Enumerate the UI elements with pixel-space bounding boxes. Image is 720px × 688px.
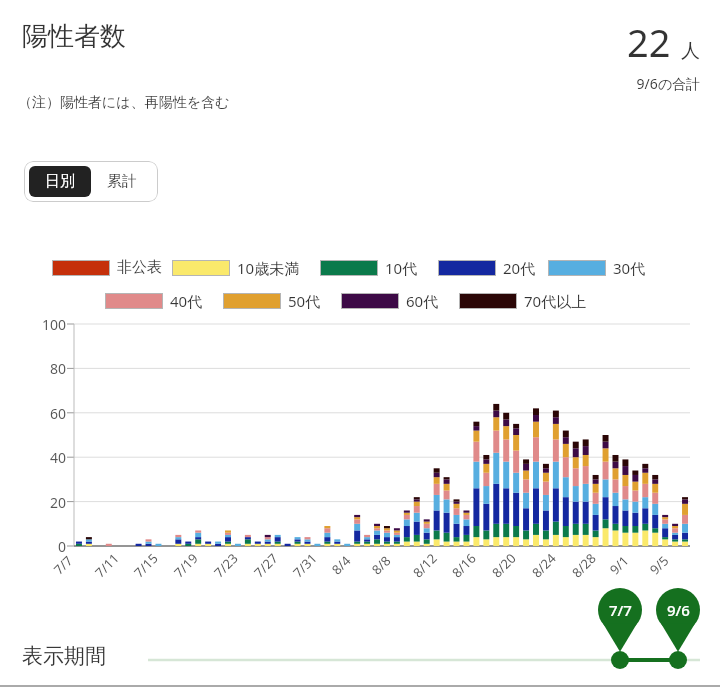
- staticText: 日別: [45, 172, 75, 191]
- staticText: 7/7: [609, 600, 632, 620]
- staticText: 20: [20, 493, 66, 512]
- staticText: 60代: [406, 291, 439, 311]
- staticText: 9/1: [606, 552, 632, 578]
- staticText: 7/7: [50, 552, 76, 578]
- button[interactable]: End date 9/6: [656, 588, 700, 632]
- staticText: 7/27: [250, 549, 282, 581]
- staticText: 陽性者数: [22, 20, 126, 53]
- staticText: 9/5: [646, 552, 672, 578]
- staticText: 7/15: [130, 549, 162, 581]
- staticText: 10歳未満: [237, 258, 300, 278]
- staticText: 40: [20, 448, 66, 467]
- staticText: 7/11: [91, 549, 123, 581]
- staticText: 8/20: [488, 549, 520, 581]
- staticText: 20代: [503, 258, 536, 278]
- staticText: 累計: [107, 172, 137, 191]
- staticText: 70代以上: [524, 291, 587, 311]
- staticText: 60: [20, 404, 66, 423]
- staticText: 30代: [613, 258, 646, 278]
- button[interactable]: 50代: [223, 291, 321, 311]
- button[interactable]: 60代: [341, 291, 439, 311]
- staticText: 7/19: [170, 549, 202, 581]
- staticText: 22: [627, 16, 671, 68]
- staticText: 10代: [385, 258, 418, 278]
- staticText: 8/16: [448, 549, 480, 581]
- staticText: 50代: [288, 291, 321, 311]
- staticText: 80: [20, 359, 66, 378]
- staticText: 表示期間: [22, 643, 106, 669]
- staticText: （注）陽性者には、再陽性を含む: [18, 94, 230, 112]
- button[interactable]: 40代: [105, 291, 203, 311]
- button[interactable]: 10歳未満: [172, 258, 300, 278]
- button[interactable]: 日別: [29, 166, 91, 197]
- staticText: 8/12: [409, 549, 441, 581]
- button[interactable]: 20代: [438, 258, 536, 278]
- staticText: 非公表: [117, 258, 162, 277]
- staticText: 8/24: [528, 549, 560, 581]
- staticText: 人: [681, 39, 700, 63]
- button[interactable]: 30代: [548, 258, 646, 278]
- staticText: 8/28: [568, 549, 600, 581]
- button[interactable]: Start date 7/7: [598, 588, 642, 632]
- staticText: 100: [20, 315, 66, 334]
- staticText: 7/23: [210, 549, 242, 581]
- button[interactable]: 10代: [320, 258, 418, 278]
- staticText: 9/6: [667, 600, 690, 620]
- staticText: 8/4: [328, 552, 354, 578]
- staticText: 9/6の合計: [540, 74, 700, 93]
- button[interactable]: 70代以上: [459, 291, 587, 311]
- button[interactable]: 非公表: [52, 258, 162, 277]
- staticText: 7/31: [289, 549, 321, 581]
- staticText: 0: [20, 537, 66, 556]
- button[interactable]: 累計: [91, 166, 153, 197]
- staticText: 40代: [170, 291, 203, 311]
- staticText: 8/8: [368, 552, 394, 578]
